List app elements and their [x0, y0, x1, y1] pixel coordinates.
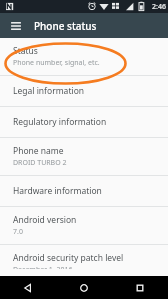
- staticText: December 1, 2016: [13, 265, 73, 269]
- staticText: Android version: [13, 214, 77, 226]
- staticText: Status: [13, 45, 38, 57]
- staticText: Legal information: [13, 85, 85, 97]
- button[interactable]: Hardware information: [0, 176, 168, 206]
- staticText: Regulatory information: [13, 116, 107, 128]
- button[interactable]: Recent apps: [112, 276, 168, 299]
- button[interactable]: Back: [0, 276, 56, 299]
- staticText: 7.0: [13, 227, 23, 237]
- button[interactable]: Regulatory information: [0, 107, 168, 137]
- button[interactable]: Android version: [0, 207, 168, 244]
- staticText: Phone status: [34, 19, 97, 33]
- button[interactable]: Android security patch level: [0, 245, 168, 276]
- button[interactable]: Status: [0, 38, 168, 75]
- staticText: Android security patch level: [13, 252, 124, 264]
- staticText: DROID TURBO 2: [13, 158, 67, 168]
- staticText: Phone name: [13, 145, 64, 157]
- button[interactable]: Phone name: [0, 138, 168, 175]
- staticText: Phone number, signal, etc.: [13, 58, 100, 68]
- button[interactable]: Open navigation menu: [6, 16, 26, 36]
- staticText: Hardware information: [13, 185, 102, 197]
- button[interactable]: Legal information: [0, 76, 168, 106]
- button[interactable]: Home: [56, 276, 112, 299]
- staticText: 2:46: [152, 2, 166, 12]
